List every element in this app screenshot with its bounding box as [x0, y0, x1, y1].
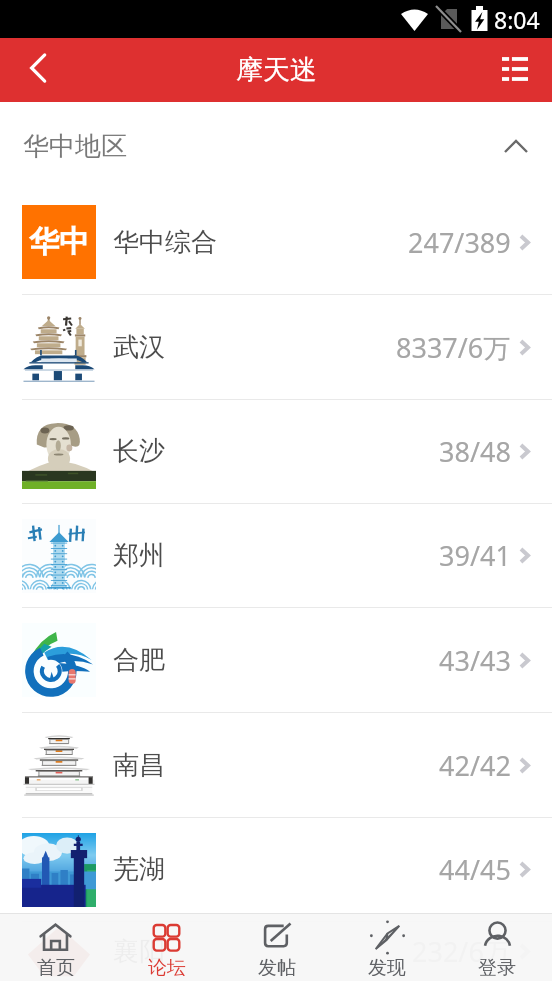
button[interactable]: 南昌 [0, 713, 552, 817]
staticText: 芜湖 [113, 853, 165, 886]
button[interactable]: 华中 [0, 190, 552, 294]
button[interactable]: Back [14, 44, 62, 92]
button[interactable]: 襄阳 [0, 922, 552, 981]
staticText: 8337/6万 [396, 329, 511, 366]
button[interactable]: 发帖 [222, 914, 332, 981]
staticText: 232/6万 [412, 933, 511, 970]
staticText: 长沙 [113, 435, 165, 468]
staticText: 247/389 [408, 224, 511, 261]
staticText: 南昌 [113, 749, 165, 782]
staticText: 华中 [29, 223, 89, 261]
staticText: 发现 [368, 956, 406, 976]
staticText: 44/45 [439, 851, 511, 888]
staticText: 43/43 [439, 642, 511, 679]
staticText: 38/48 [439, 433, 511, 470]
button[interactable]: 华中地区 [0, 102, 552, 190]
staticText: 华中综合 [113, 226, 217, 259]
button[interactable]: 登录 [442, 914, 552, 981]
staticText: 武汉 [113, 331, 165, 364]
button[interactable]: 合肥 [0, 608, 552, 712]
button[interactable]: 郑州 [0, 504, 552, 607]
staticText: 39/41 [439, 537, 511, 574]
staticText: 发帖 [258, 956, 296, 976]
staticText: 42/42 [439, 747, 511, 784]
staticText: 首页 [37, 956, 75, 976]
button[interactable]: 武汉 [0, 295, 552, 399]
staticText: 论坛 [148, 956, 186, 976]
staticText: 合肥 [113, 644, 165, 677]
staticText: 登录 [478, 956, 516, 976]
staticText: 8:04 [494, 4, 540, 35]
button[interactable]: 论坛 [111, 914, 222, 981]
button[interactable]: 长沙 [0, 400, 552, 503]
staticText: 华中地区 [23, 130, 127, 163]
staticText: 郑州 [113, 539, 165, 572]
button[interactable]: 发现 [332, 914, 442, 981]
button[interactable]: 芜湖 [0, 818, 552, 921]
staticText: 襄阳 [113, 935, 165, 968]
button[interactable]: 首页 [0, 914, 111, 981]
staticText: 摩天迷 [236, 53, 317, 87]
button[interactable]: Menu [491, 44, 539, 92]
